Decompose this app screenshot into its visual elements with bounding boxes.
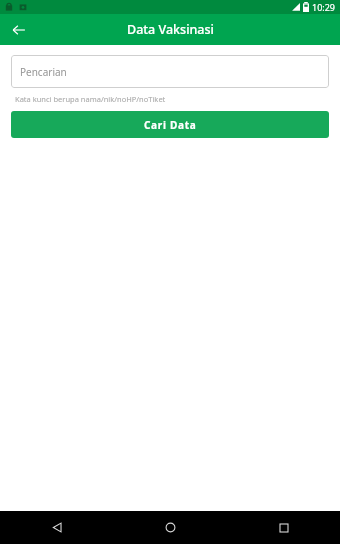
button[interactable]: Home [114, 511, 227, 544]
staticText: Kata kunci berupa nama/nik/noHP/noTiket [15, 94, 166, 104]
staticText: 10:29 [312, 1, 336, 13]
staticText: Cari Data [144, 118, 197, 132]
button[interactable]: Pencarian [11, 55, 329, 88]
button[interactable]: Cari Data [11, 111, 329, 138]
button[interactable]: Recent apps [227, 511, 340, 544]
staticText: Pencarian [20, 65, 67, 79]
button[interactable]: Back [7, 18, 31, 42]
button[interactable]: Back [0, 511, 114, 544]
staticText: Data Vaksinasi [127, 21, 214, 38]
